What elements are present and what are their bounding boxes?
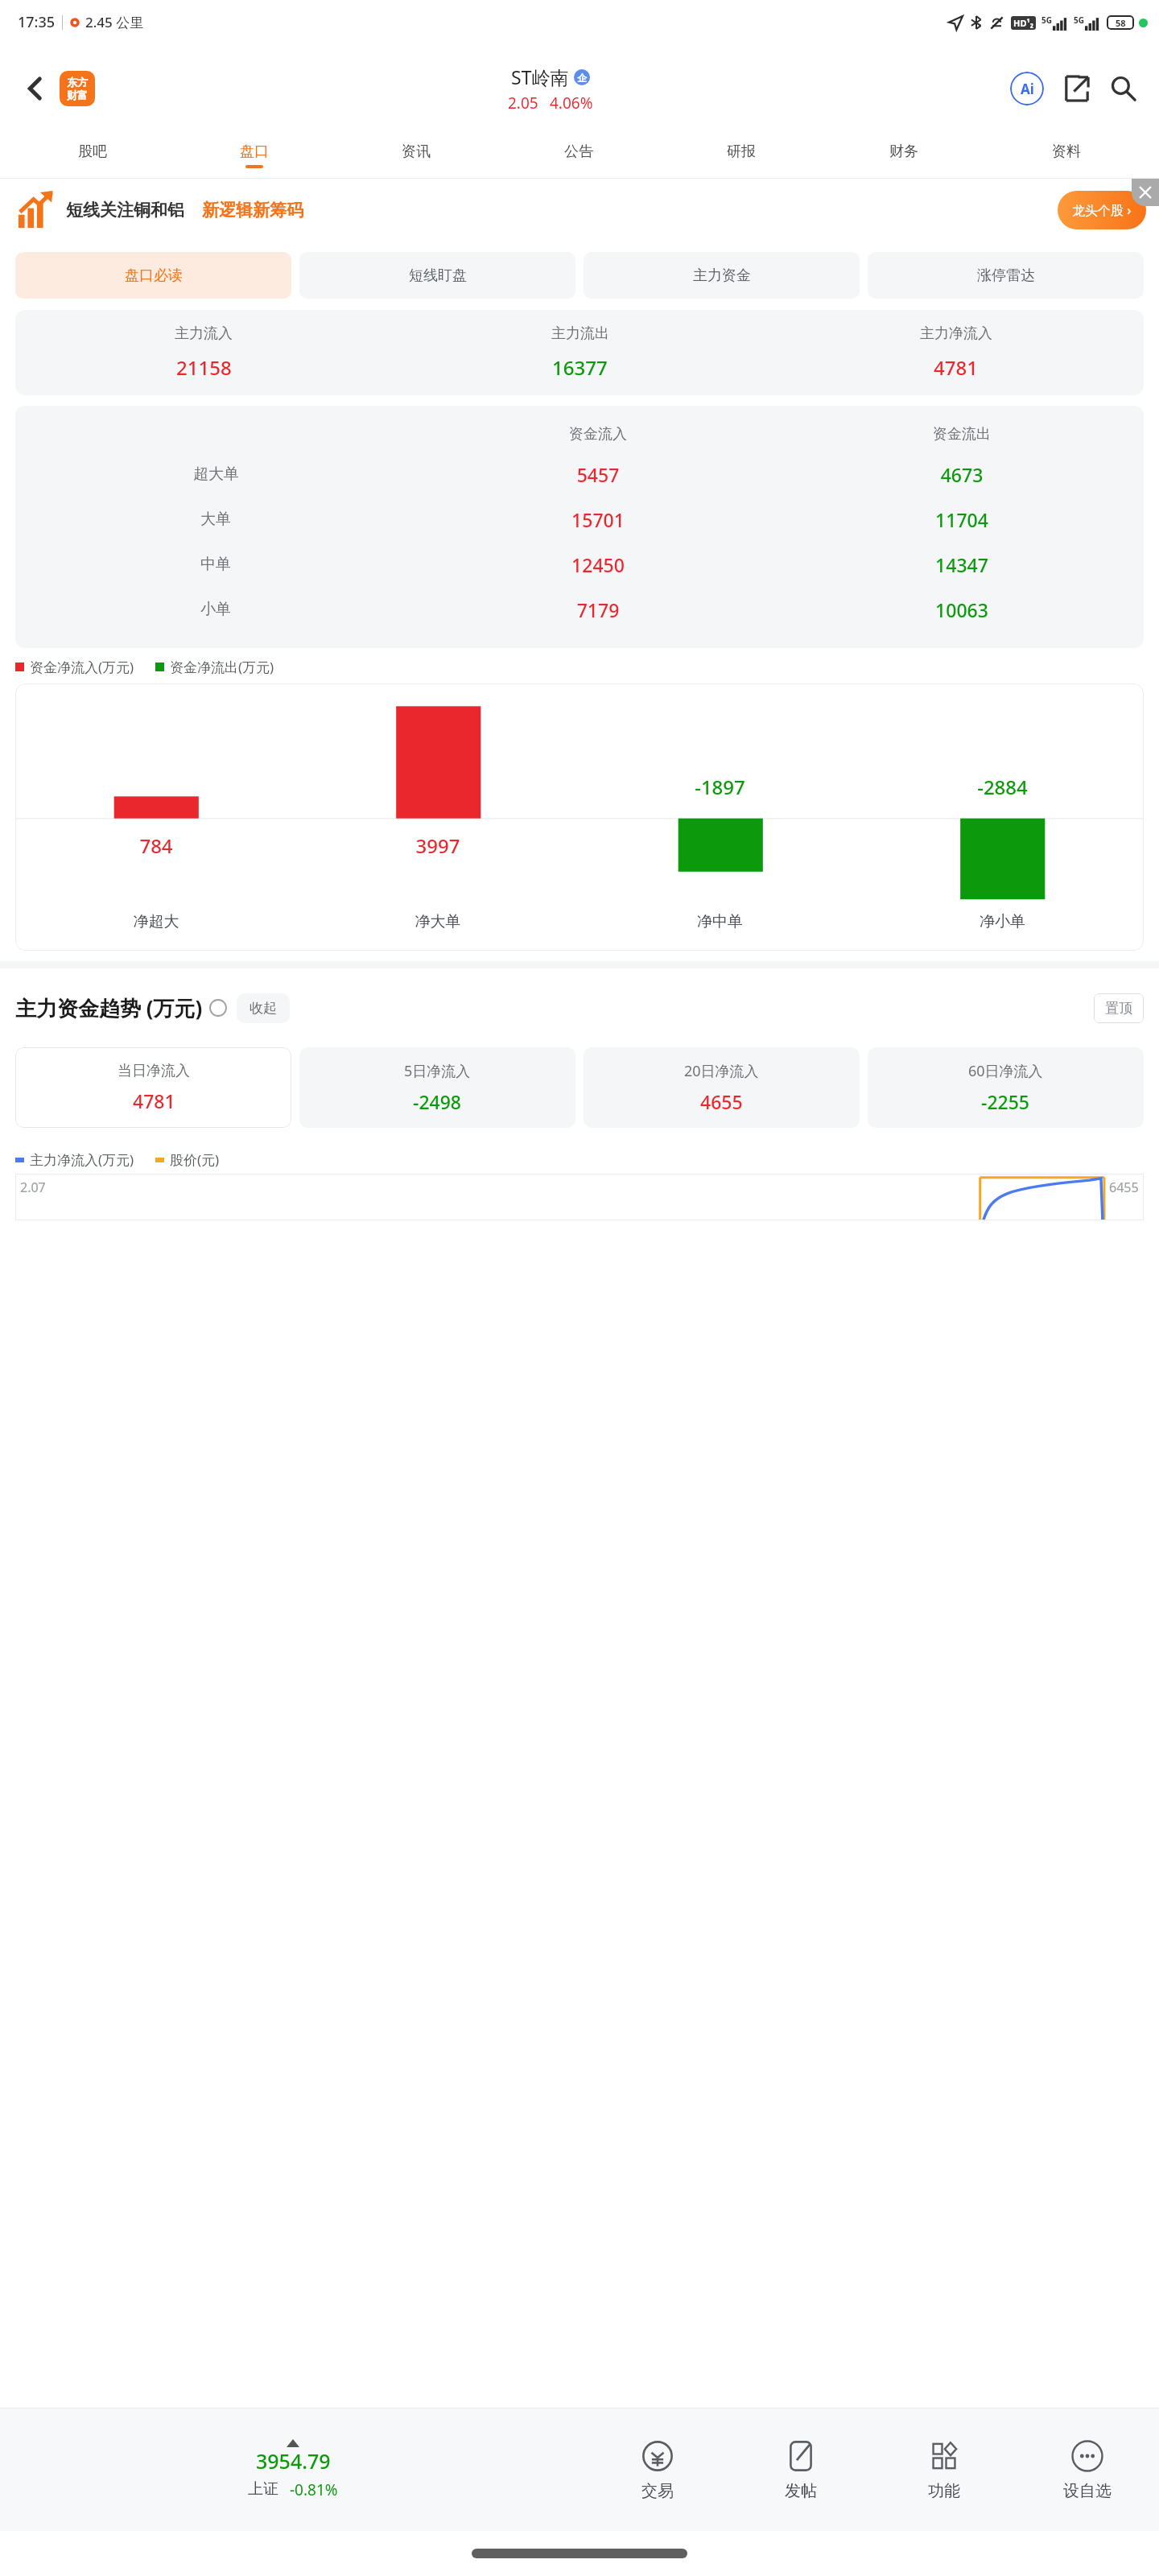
staticText: 公告: [564, 142, 593, 161]
staticText: 3954.79: [256, 2447, 331, 2475]
staticText: 4673: [780, 462, 1144, 487]
button[interactable]: 盘口必读: [15, 252, 291, 299]
staticText: 主力净流入(万元): [30, 1150, 134, 1169]
staticText: 上证: [248, 2479, 278, 2499]
staticText: 资金流出: [780, 425, 1144, 444]
button[interactable]: 5日净流入: [299, 1047, 575, 1128]
staticText: -2498: [413, 1089, 462, 1114]
staticText: 6455: [1109, 1179, 1139, 1196]
staticText: 7179: [416, 597, 780, 622]
button[interactable]: 公告: [497, 133, 660, 178]
staticText: 主力净流入: [920, 324, 992, 343]
button[interactable]: 资讯: [335, 133, 497, 178]
button[interactable]: 财务: [823, 133, 985, 178]
button[interactable]: 3954.79: [0, 2409, 586, 2531]
staticText: 主力资金: [693, 266, 751, 285]
staticText: 2.05: [508, 93, 538, 114]
staticText: 研报: [727, 142, 756, 161]
staticText: 58: [1116, 17, 1126, 29]
staticText: 资金流入: [416, 425, 780, 444]
staticText: -2255: [981, 1089, 1030, 1114]
button[interactable]: 龙头个股 ›: [1058, 191, 1146, 229]
staticText: -0.81%: [290, 2479, 338, 2500]
staticText: 4781: [133, 1088, 175, 1113]
button[interactable]: Back: [14, 68, 56, 109]
staticText: 5457: [416, 462, 780, 487]
staticText: 5G: [1041, 14, 1052, 26]
staticText: 16377: [552, 354, 608, 381]
staticText: 股价(元): [170, 1150, 220, 1169]
staticText: 财富: [67, 89, 88, 101]
staticText: ST岭南: [511, 64, 569, 89]
staticText: 短线关注铜和铝: [66, 200, 184, 221]
staticText: 14347: [780, 552, 1144, 577]
button[interactable]: Close: [1132, 179, 1159, 206]
staticText: 涨停雷达: [977, 266, 1035, 285]
staticText: 资讯: [402, 142, 431, 161]
button[interactable]: 收起: [237, 993, 290, 1023]
button[interactable]: 发帖: [729, 2409, 872, 2531]
staticText: 盘口: [240, 142, 269, 161]
button[interactable]: 股吧: [11, 133, 173, 178]
staticText: 17:35: [18, 12, 56, 32]
staticText: 东方: [67, 76, 88, 89]
button[interactable]: 功能: [872, 2409, 1016, 2531]
button[interactable]: Help: [209, 999, 227, 1017]
button[interactable]: 60日净流入: [868, 1047, 1144, 1128]
button[interactable]: 东方: [60, 71, 95, 106]
staticText: 净超大: [15, 912, 297, 931]
staticText: 60日净流入: [968, 1061, 1043, 1081]
staticText: 净小单: [861, 912, 1144, 931]
staticText: 4.06%: [550, 93, 593, 114]
button[interactable]: 置顶: [1094, 993, 1144, 1023]
staticText: -1897: [579, 774, 861, 800]
staticText: 15701: [416, 507, 780, 532]
staticText: 龙头个股 ›: [1072, 201, 1132, 219]
staticText: HD¹₂: [1013, 17, 1033, 29]
staticText: 股吧: [78, 142, 107, 161]
button[interactable]: 涨停雷达: [868, 252, 1144, 299]
staticText: 净中单: [579, 912, 861, 931]
staticText: 5G: [1074, 14, 1084, 26]
staticText: 主力流入: [175, 324, 233, 343]
button[interactable]: 盘口: [173, 133, 335, 178]
staticText: 主力资金趋势 (万元): [15, 993, 203, 1022]
staticText: 主力流出: [551, 324, 609, 343]
staticText: 净大单: [297, 912, 579, 931]
staticText: 置顶: [1105, 1000, 1132, 1017]
staticText: 设自选: [1063, 2481, 1112, 2501]
button[interactable]: 主力资金: [584, 252, 860, 299]
staticText: 784: [15, 832, 297, 859]
button[interactable]: 资料: [985, 133, 1148, 178]
button[interactable]: AI: [1006, 68, 1048, 109]
staticText: 财务: [889, 142, 918, 161]
staticText: 短线盯盘: [409, 266, 467, 285]
button[interactable]: Share: [1056, 68, 1098, 109]
staticText: 10063: [780, 597, 1144, 622]
staticText: 5日净流入: [404, 1061, 471, 1081]
staticText: 12450: [416, 552, 780, 577]
staticText: 小单: [200, 600, 231, 619]
button[interactable]: Search: [1103, 68, 1145, 109]
button[interactable]: 设自选: [1016, 2409, 1159, 2531]
staticText: 大单: [200, 510, 231, 529]
staticText: -2884: [861, 774, 1144, 800]
staticText: 20日净流入: [684, 1061, 759, 1081]
staticText: 11704: [780, 507, 1144, 532]
staticText: Ai: [1021, 80, 1034, 98]
button[interactable]: 当日净流入: [15, 1047, 291, 1128]
staticText: 企: [577, 72, 587, 84]
button[interactable]: 交易: [586, 2409, 729, 2531]
staticText: 2.07: [20, 1179, 46, 1196]
staticText: 资料: [1052, 142, 1081, 161]
staticText: 21158: [176, 354, 232, 381]
staticText: 3997: [297, 832, 579, 859]
button[interactable]: 研报: [660, 133, 823, 178]
staticText: 4781: [934, 354, 978, 381]
staticText: 4655: [700, 1089, 743, 1114]
button[interactable]: 20日净流入: [584, 1047, 860, 1128]
staticText: 当日净流入: [118, 1062, 190, 1080]
staticText: 功能: [928, 2481, 960, 2501]
button[interactable]: 短线盯盘: [299, 252, 575, 299]
staticText: 盘口必读: [125, 266, 183, 285]
